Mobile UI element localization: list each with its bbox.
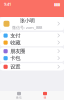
button[interactable]: 朋友圈 [0,48,64,55]
button[interactable]: 设置 [0,63,64,70]
staticText: 朋友圈 [10,48,25,54]
button[interactable]: 卡包 [0,55,64,62]
button[interactable]: 微信 [12,92,26,99]
staticText: 支付 [10,32,20,39]
staticText: 张小明 [19,17,34,24]
button[interactable]: 我 [38,92,52,99]
button[interactable]: 张小明 [0,17,64,30]
staticText: 收藏 [10,39,20,46]
staticText: 微信 [16,96,22,99]
staticText: ▮▮▮ [54,2,60,6]
button[interactable]: 收藏 [0,39,64,46]
staticText: 9:41 [4,2,11,7]
staticText: 我 [43,96,46,99]
staticText: 卡包 [10,55,20,61]
button[interactable]: 支付 [0,32,64,39]
staticText: 设置 [10,63,20,70]
staticText: 微信号: zxm_888 [12,25,42,30]
